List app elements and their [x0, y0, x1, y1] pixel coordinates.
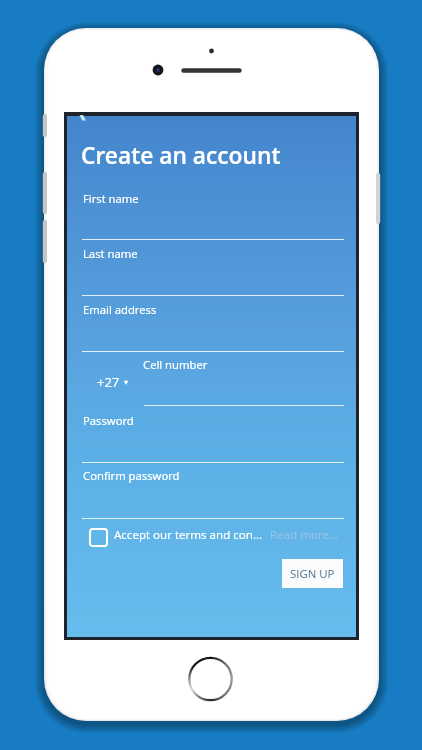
button[interactable]: Select country dialling code: [122, 377, 131, 386]
staticText: Read more...: [270, 527, 339, 543]
button[interactable]: Accept our terms and con...: [114, 527, 263, 543]
staticText: Confirm password: [83, 468, 180, 483]
staticText: Last name: [83, 246, 138, 261]
staticText: Email address: [83, 302, 157, 317]
button[interactable]: Read more...: [270, 527, 339, 543]
button[interactable]: SIGN UP: [282, 559, 343, 588]
staticText: +27: [97, 373, 120, 391]
staticText: Create an account: [81, 140, 281, 171]
staticText: First name: [83, 191, 139, 206]
staticText: Accept our terms and con...: [114, 527, 263, 543]
staticText: Cell number: [143, 357, 208, 372]
button[interactable]: Accept terms and conditions: [90, 529, 107, 546]
staticText: SIGN UP: [290, 566, 335, 582]
staticText: Password: [83, 413, 134, 428]
